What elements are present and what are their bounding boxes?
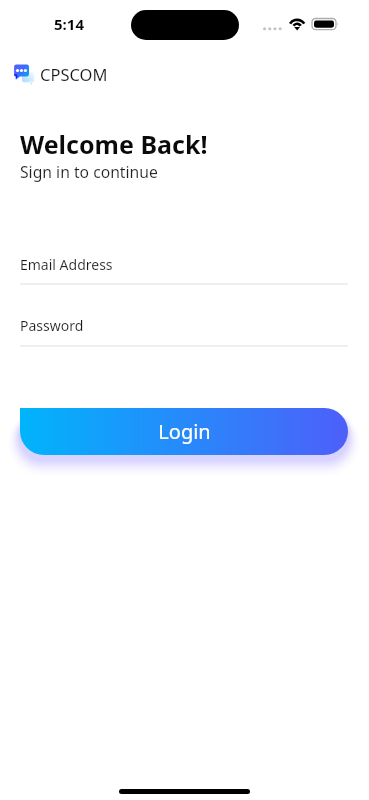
staticText: Password [20, 316, 84, 335]
staticText: CPSCOM [40, 63, 108, 85]
staticText: Login [158, 418, 211, 445]
staticText: Email Address [20, 255, 113, 274]
staticText: Welcome Back! [20, 127, 208, 161]
staticText: Sign in to continue [20, 161, 158, 182]
button[interactable]: Password [20, 316, 348, 347]
staticText: 5:14 [54, 14, 84, 34]
button[interactable]: Email Address [20, 255, 348, 285]
button[interactable]: Login [20, 408, 348, 455]
